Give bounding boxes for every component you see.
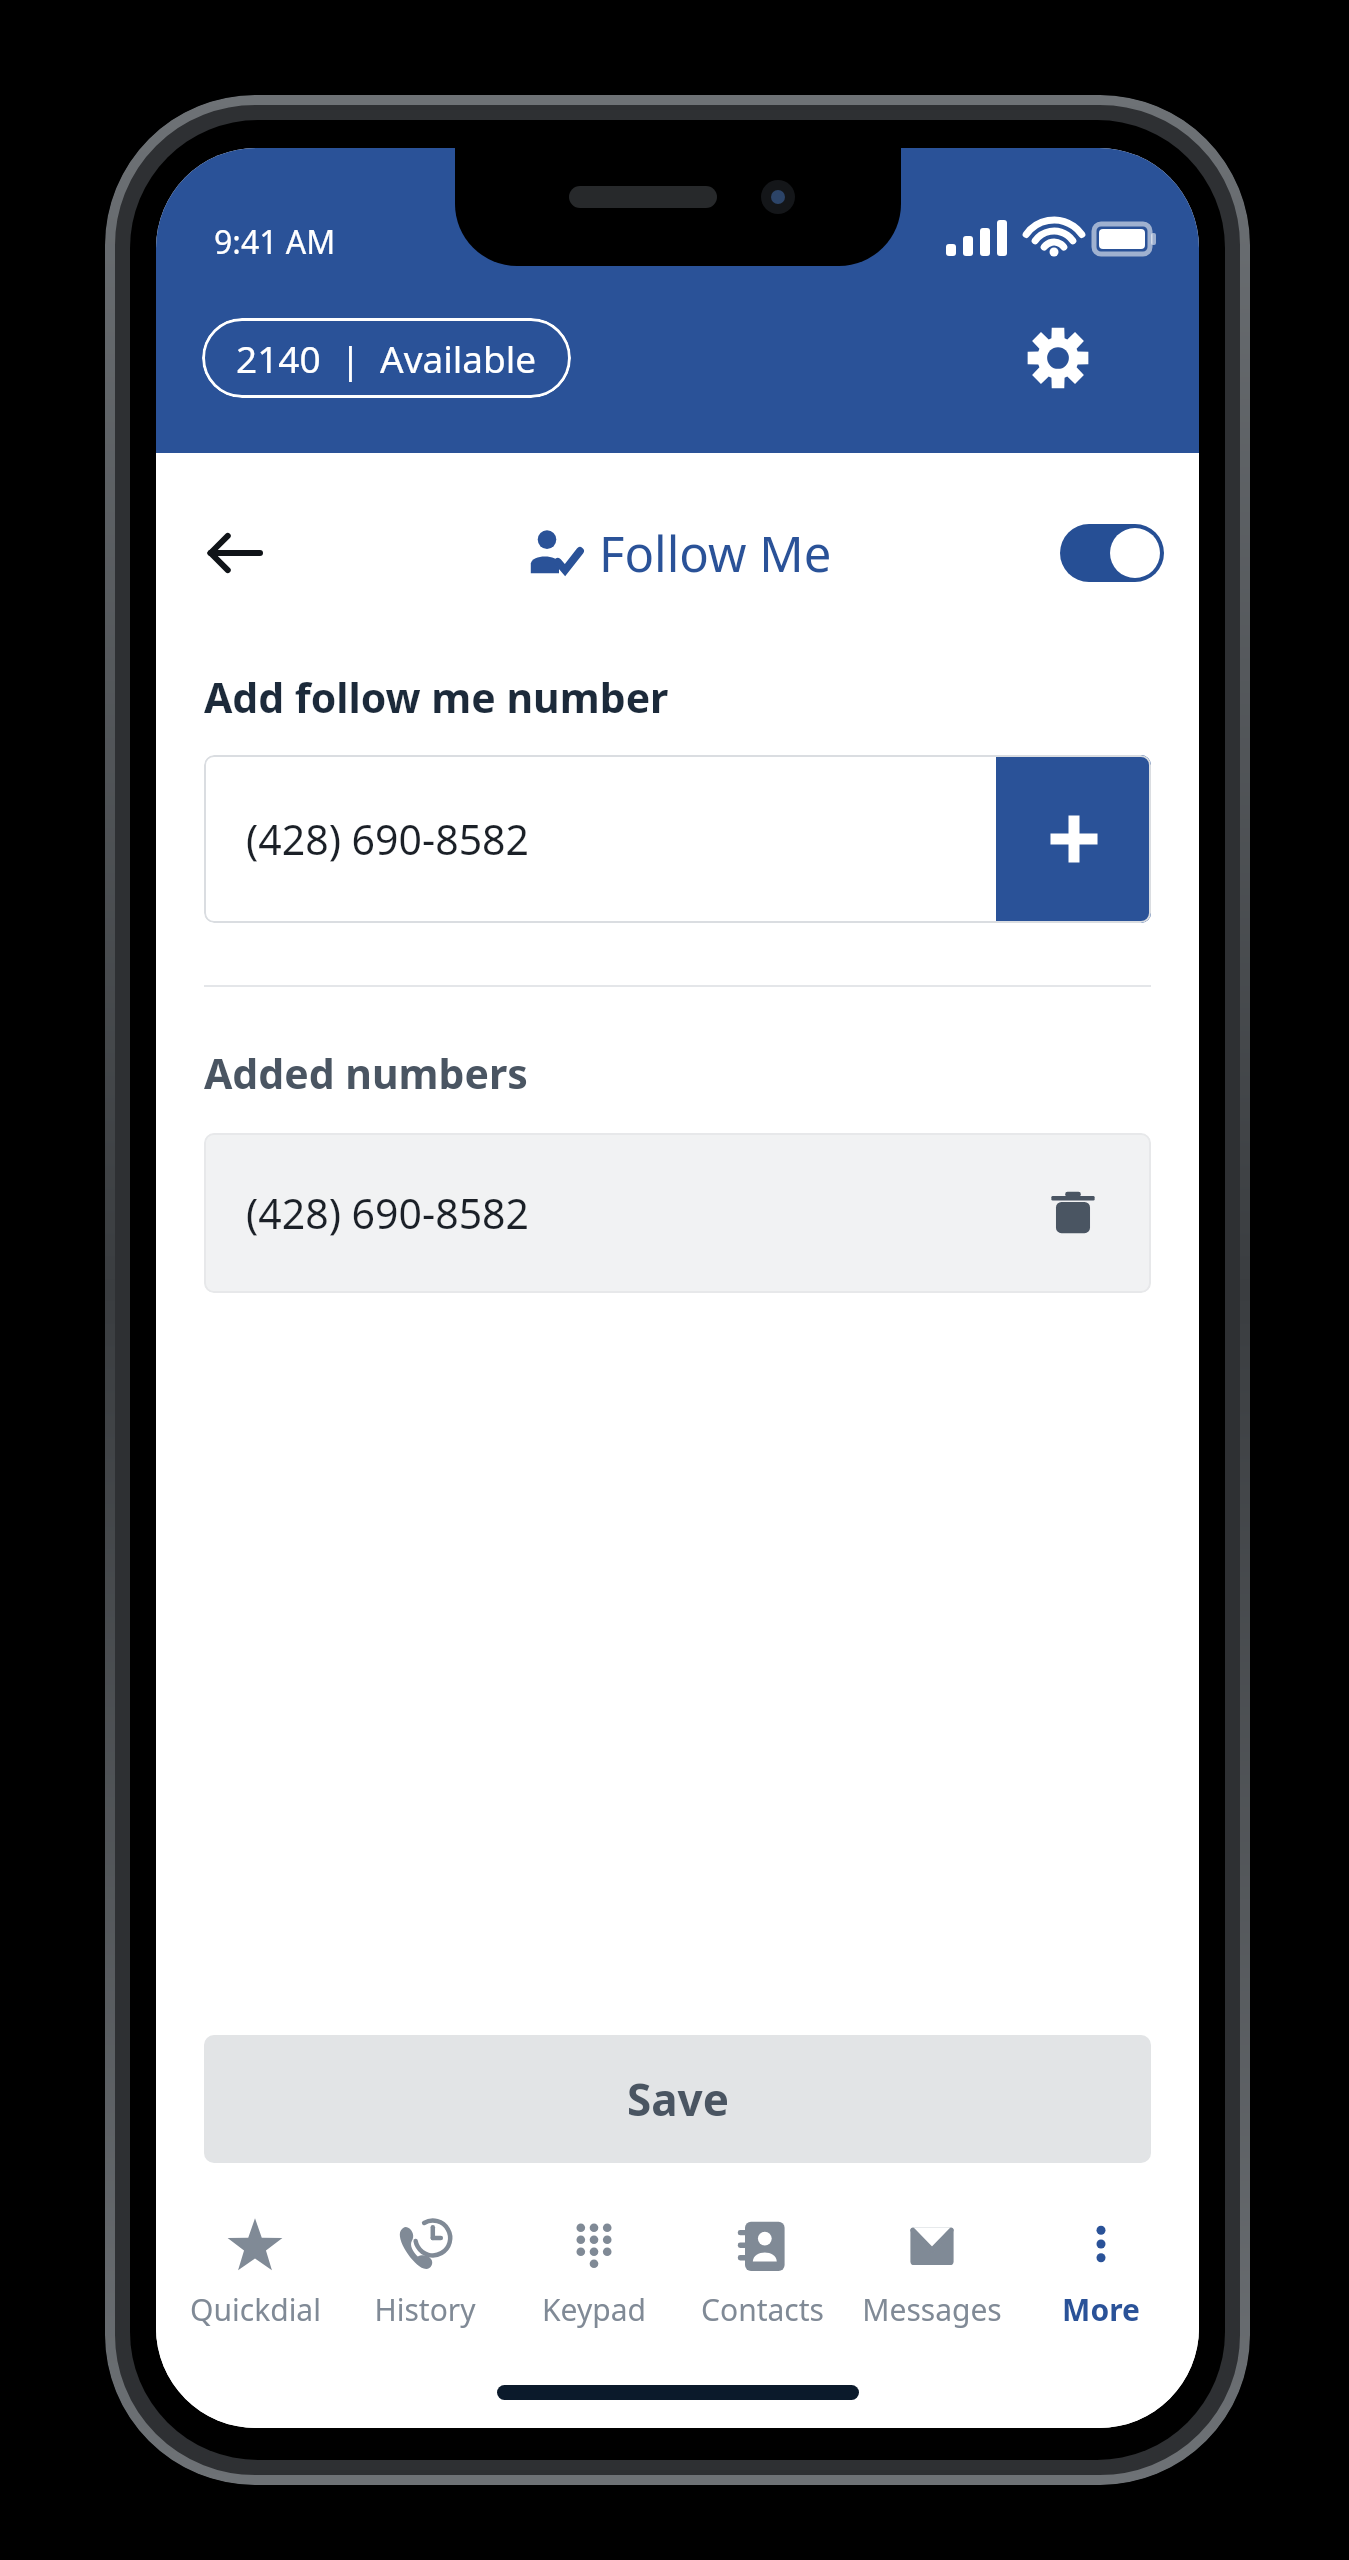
staticText: Follow Me: [599, 520, 832, 587]
button[interactable]: History: [340, 2209, 509, 2359]
button[interactable]: Back: [186, 505, 282, 601]
button[interactable]: More: [1016, 2209, 1185, 2359]
staticText: Messages: [862, 2289, 1002, 2330]
staticText: Available: [380, 333, 537, 383]
button[interactable]: Quickdial: [170, 2209, 340, 2359]
button[interactable]: Contacts: [678, 2209, 847, 2359]
button[interactable]: Add number: [996, 755, 1151, 923]
staticText: Added numbers: [204, 1045, 528, 1101]
staticText: Keypad: [542, 2289, 646, 2330]
button[interactable]: Messages: [847, 2209, 1016, 2359]
button[interactable]: (428) 690-8582: [204, 755, 996, 923]
button[interactable]: Delete number: [1037, 1177, 1109, 1249]
staticText: History: [374, 2289, 476, 2330]
button[interactable]: Save: [204, 2035, 1151, 2163]
staticText: Contacts: [701, 2289, 824, 2330]
staticText: Save: [627, 2069, 729, 2129]
staticText: (428) 690-8582: [246, 811, 529, 867]
staticText: More: [1062, 2289, 1140, 2330]
button[interactable]: Follow Me toggle: [1057, 514, 1167, 592]
button[interactable]: (428) 690-8582: [204, 1133, 1151, 1293]
staticText: Add follow me number: [204, 669, 669, 725]
staticText: Quickdial: [190, 2289, 321, 2330]
staticText: 9:41 AM: [214, 220, 336, 264]
staticText: 2140: [236, 333, 321, 383]
button[interactable]: Keypad: [509, 2209, 678, 2359]
button[interactable]: Settings: [1016, 316, 1100, 400]
staticText: |: [321, 333, 380, 383]
staticText: (428) 690-8582: [246, 1185, 529, 1241]
button[interactable]: 2140: [202, 318, 571, 398]
